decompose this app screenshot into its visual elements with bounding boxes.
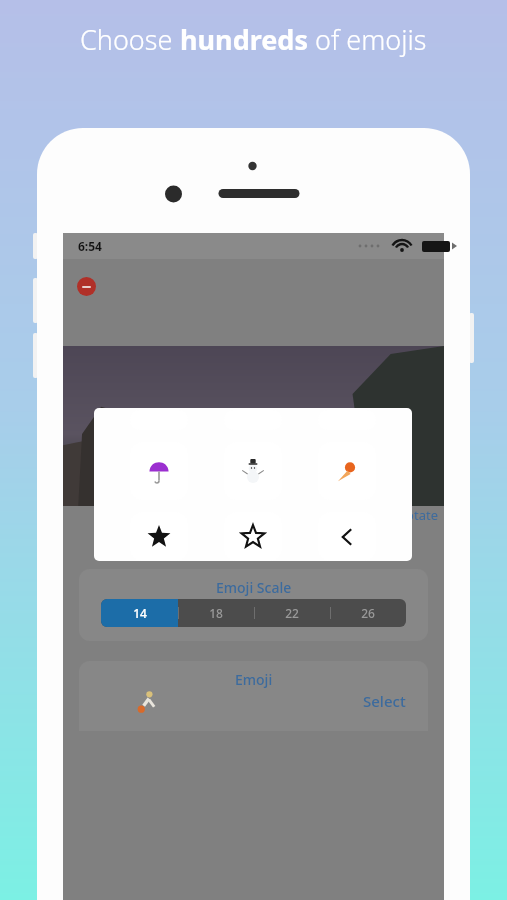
button[interactable]: Emoji 4 [224,442,282,500]
button[interactable]: Remove [77,277,96,296]
staticText: Choose [80,21,180,58]
button[interactable]: 22 [254,599,330,627]
button[interactable]: Select [363,691,406,711]
button[interactable]: Emoji [79,661,428,731]
staticText: 6:54 [78,238,102,254]
button[interactable]: Emoji 8 [318,512,376,561]
staticText: 14 [133,605,147,621]
button[interactable]: Emoji 6 [130,512,188,561]
staticText: 26 [361,605,375,621]
staticText: hundreds [180,21,308,58]
staticText: Emoji [235,670,273,689]
button[interactable]: Emoji 3 [130,442,188,500]
staticText: of emojis [308,21,427,58]
button[interactable]: Emoji 5 [318,442,376,500]
button[interactable]: 18 [178,599,254,627]
staticText: 18 [209,605,223,621]
staticText: Emoji Scale [216,578,292,597]
button[interactable]: 14 [101,599,178,627]
button[interactable]: 26 [330,599,406,627]
button[interactable]: Rotate [398,506,438,524]
staticText: 22 [285,605,299,621]
button[interactable]: Emoji 7 [224,512,282,561]
